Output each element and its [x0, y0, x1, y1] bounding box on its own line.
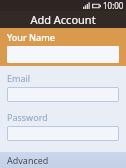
staticText: Email — [7, 72, 31, 84]
other: Battery — [92, 3, 101, 9]
staticText: Add Account — [30, 12, 96, 27]
staticText: Password — [7, 111, 48, 123]
staticText: Advanced — [7, 154, 49, 166]
button[interactable]: Your Name — [0, 28, 126, 66]
staticText: 10:00 — [103, 0, 124, 11]
other: Signal strength — [83, 2, 90, 9]
button[interactable] — [7, 87, 119, 102]
staticText: Your Name — [7, 31, 55, 43]
button[interactable] — [7, 126, 119, 141]
button[interactable]: Advanced — [0, 152, 126, 168]
